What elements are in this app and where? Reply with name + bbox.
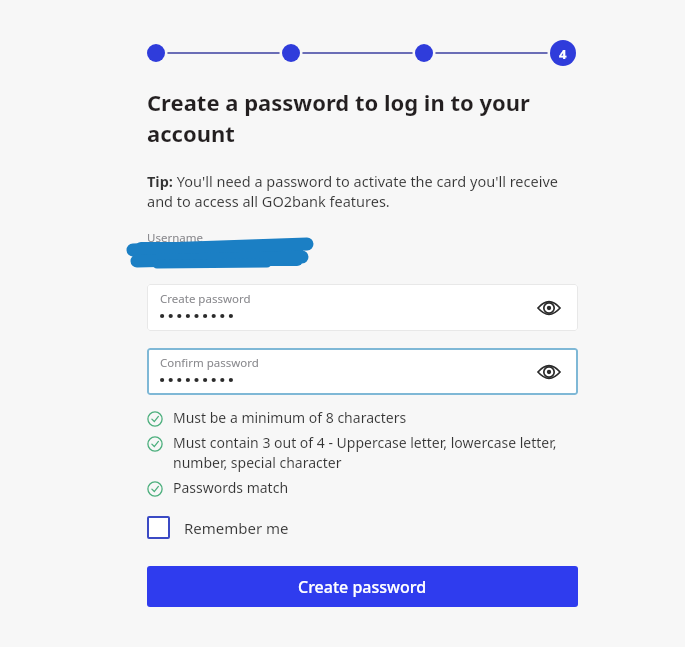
staticText: Create password [298,576,427,598]
staticText: 4 [559,45,567,63]
staticText: Create password [160,291,251,307]
button[interactable]: Show password [536,359,562,385]
button[interactable]: Confirm password [147,348,578,395]
button[interactable]: Create password [147,284,578,331]
staticText: Passwords match [173,478,558,497]
staticText: Tip: You'll need a password to activate … [147,171,575,212]
staticText: Must contain 3 out of 4 - Uppercase lett… [173,433,558,472]
staticText: Create a password to log in to your acco… [147,87,547,149]
staticText: Username [147,230,203,246]
staticText: Confirm password [160,355,259,371]
staticText: Must be a minimum of 8 characters [173,408,558,427]
button[interactable]: Remember me [147,514,289,541]
staticText: Remember me [184,518,289,538]
button[interactable]: Create password [147,566,578,607]
button[interactable]: Show password [536,295,562,321]
